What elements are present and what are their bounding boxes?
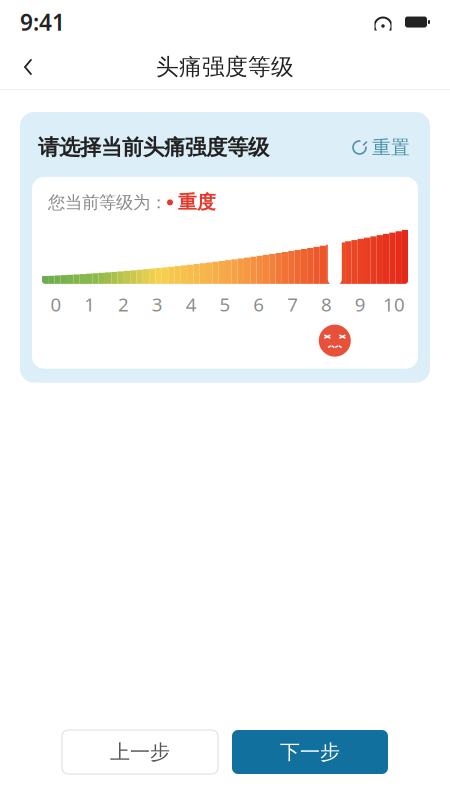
staticText: 1: [84, 292, 95, 317]
button[interactable]: 上一步: [62, 730, 218, 774]
staticText: 7: [287, 292, 298, 317]
staticText: 重度: [178, 191, 216, 214]
staticText: 5: [219, 292, 230, 317]
staticText: 3: [152, 292, 163, 317]
staticText: 您当前等级为：: [48, 192, 167, 213]
button[interactable]: 下一步: [232, 730, 388, 774]
staticText: 6: [253, 292, 264, 317]
staticText: 上一步: [110, 740, 170, 764]
staticText: 头痛强度等级: [156, 53, 294, 81]
staticText: 下一步: [280, 740, 340, 764]
button[interactable]: 返回: [6, 45, 50, 89]
staticText: 重置: [372, 136, 410, 159]
staticText: 8: [321, 292, 332, 317]
staticText: 4: [186, 292, 197, 317]
staticText: 10: [383, 292, 405, 317]
staticText: 9: [355, 292, 366, 317]
staticText: 请选择当前头痛强度等级: [38, 134, 269, 161]
staticText: 0: [50, 292, 61, 317]
button[interactable]: 重置: [350, 132, 412, 163]
staticText: 2: [118, 292, 129, 317]
staticText: 9:41: [20, 7, 65, 37]
